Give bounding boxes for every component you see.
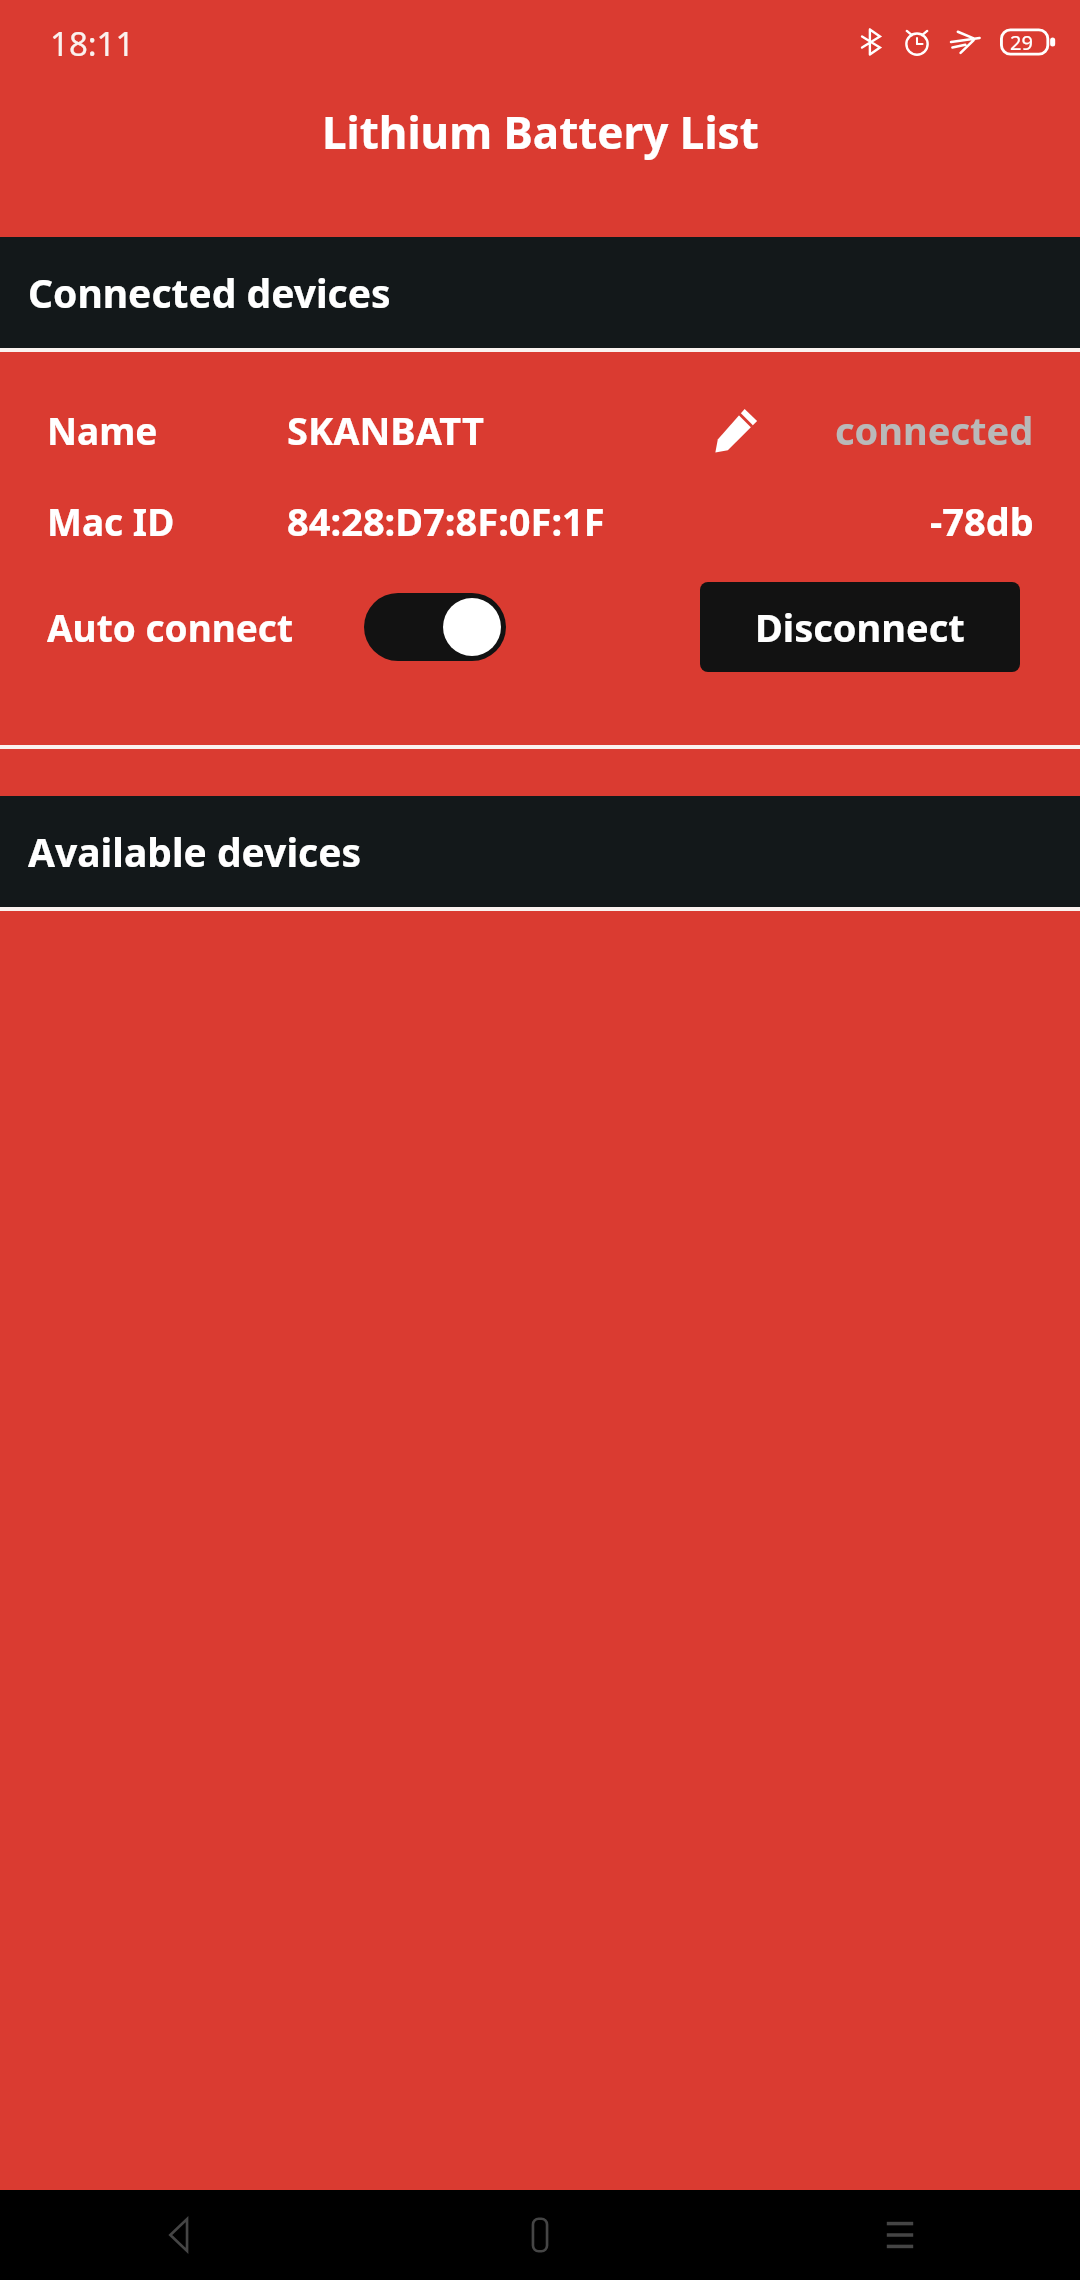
staticText: Connected devices — [28, 266, 391, 319]
button[interactable]: Back — [0, 2190, 360, 2280]
staticText: Auto connect — [47, 602, 294, 652]
staticText: SKANBATT — [287, 404, 484, 456]
button[interactable]: Edit device name — [706, 400, 766, 460]
staticText: 84:28:D7:8F:0F:1F — [287, 495, 605, 547]
button[interactable]: Auto connect — [364, 593, 506, 661]
staticText: Name — [47, 405, 158, 455]
staticText: Available devices — [28, 825, 362, 878]
staticText: 29 — [1010, 29, 1033, 56]
button[interactable]: Recent apps — [720, 2190, 1080, 2280]
button[interactable]: Name — [0, 352, 1080, 745]
button[interactable]: Home — [360, 2190, 720, 2280]
button[interactable]: Disconnect — [700, 582, 1020, 672]
staticText: 18:11 — [50, 21, 135, 66]
staticText: connected — [835, 404, 1034, 456]
staticText: Lithium Battery List — [322, 102, 759, 162]
button[interactable]: Connected devices — [0, 237, 1080, 348]
staticText: Mac ID — [47, 496, 175, 546]
staticText: -78db — [930, 495, 1034, 547]
staticText: Disconnect — [755, 601, 965, 653]
button[interactable]: Available devices — [0, 796, 1080, 907]
